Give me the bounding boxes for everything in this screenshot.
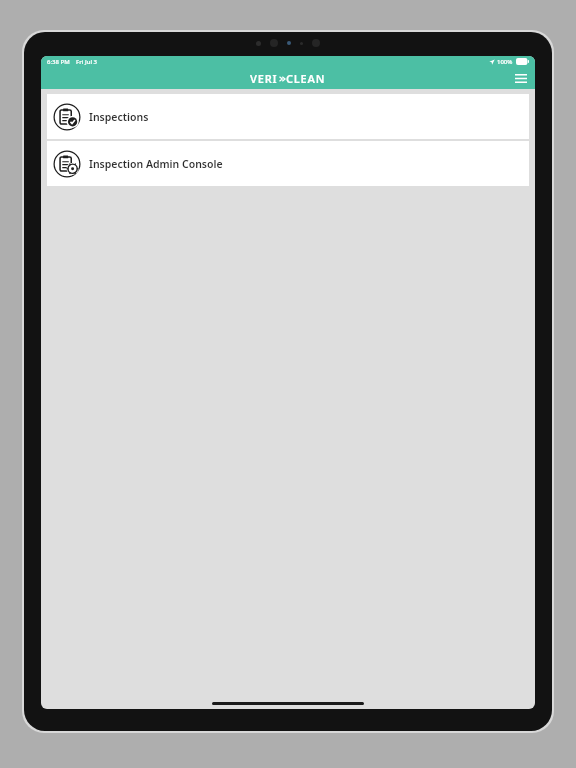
button[interactable]: Open navigation menu xyxy=(511,68,531,88)
staticText: CLEAN xyxy=(286,71,326,86)
staticText: 100% xyxy=(497,58,513,66)
staticText: VERI xyxy=(250,71,278,86)
staticText: 6:38 PM xyxy=(47,58,70,66)
button[interactable]: Inspections xyxy=(47,94,529,139)
staticText: Fri Jul 3 xyxy=(76,58,98,66)
button[interactable]: Inspection Admin Console xyxy=(47,141,529,186)
staticText: Inspection Admin Console xyxy=(89,157,223,171)
staticText: Inspections xyxy=(89,110,149,124)
